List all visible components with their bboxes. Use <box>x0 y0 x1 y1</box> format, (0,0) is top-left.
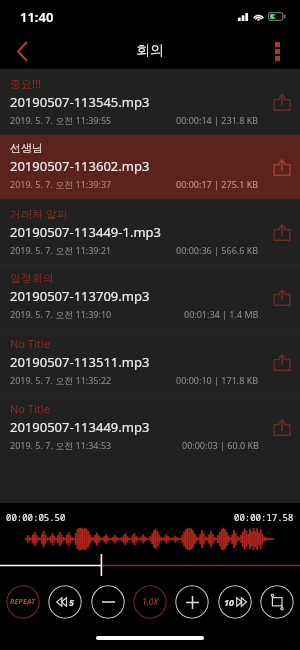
button[interactable]: Repeat <box>6 585 40 619</box>
staticText: 2019. 5. 7. 오전 11:39:10 <box>10 308 112 320</box>
button[interactable]: 거래처 알파 <box>0 199 300 264</box>
staticText: 11:40 <box>20 8 54 26</box>
staticText: 회의 <box>136 42 164 60</box>
staticText: 1.0X <box>142 596 159 608</box>
staticText: 20190507-113511.mp3 <box>10 353 150 371</box>
button[interactable]: 선생님 <box>0 134 300 199</box>
button[interactable]: Share <box>264 146 300 188</box>
staticText: 00:00:17.58 <box>234 511 294 523</box>
staticText: 중요!!! <box>10 76 41 91</box>
button[interactable]: 중요!!! <box>0 69 300 134</box>
button[interactable]: Increase speed <box>175 585 209 619</box>
staticText: 20190507-113602.mp3 <box>10 157 150 175</box>
staticText: 20190507-113709.mp3 <box>10 287 150 305</box>
staticText: 20190507-113545.mp3 <box>10 93 150 111</box>
button[interactable]: Decrease speed <box>91 585 125 619</box>
staticText: 2019. 5. 7. 오전 11:39:55 <box>10 114 112 126</box>
staticText: REPEAT <box>10 597 36 607</box>
button[interactable]: Back <box>0 33 44 69</box>
staticText: 일정회의 <box>10 271 54 285</box>
staticText: No Title <box>10 401 50 416</box>
button[interactable]: Share <box>264 341 300 383</box>
staticText: 2019. 5. 7. 오전 11:34:53 <box>10 439 112 451</box>
staticText: 00:00:14 | 231.8 KB <box>176 114 259 126</box>
staticText: 20190507-113449-1.mp3 <box>10 223 161 241</box>
button[interactable]: No Title <box>0 329 300 394</box>
staticText: 거래처 알파 <box>10 206 68 221</box>
button[interactable]: Share <box>264 81 300 123</box>
staticText: 5 <box>69 596 74 608</box>
button[interactable]: No Title <box>0 394 300 459</box>
button[interactable]: Trim <box>260 585 294 619</box>
staticText: 선생님 <box>10 141 43 155</box>
button[interactable]: 일정회의 <box>0 264 300 329</box>
staticText: 2019. 5. 7. 오전 11:39:21 <box>10 244 112 256</box>
button[interactable]: Forward 10 seconds <box>218 585 252 619</box>
staticText: 20190507-113449.mp3 <box>10 418 150 436</box>
staticText: 2019. 5. 7. 오전 11:35:22 <box>10 374 112 386</box>
staticText: 10 <box>224 596 234 608</box>
button[interactable]: Share <box>264 211 300 253</box>
staticText: No Title <box>10 336 50 351</box>
button[interactable]: Share <box>264 276 300 318</box>
staticText: 00:00:10 | 171.8 KB <box>176 374 259 386</box>
button[interactable]: Rewind 5 seconds <box>48 585 82 619</box>
staticText: 00:00:03 | 60.0 KB <box>182 439 259 451</box>
staticText: 2019. 5. 7. 오전 11:39:37 <box>10 178 112 190</box>
button[interactable]: More options <box>260 33 294 69</box>
staticText: 00:00:17 | 275.1 KB <box>176 178 259 190</box>
staticText: 00:01:34 | 1.4 MB <box>184 308 259 320</box>
staticText: 00:00:05.50 <box>6 511 66 523</box>
button[interactable]: Playback speed 1.0X <box>133 585 167 619</box>
staticText: 00:00:36 | 566.6 KB <box>176 244 259 256</box>
button[interactable]: Share <box>264 406 300 448</box>
